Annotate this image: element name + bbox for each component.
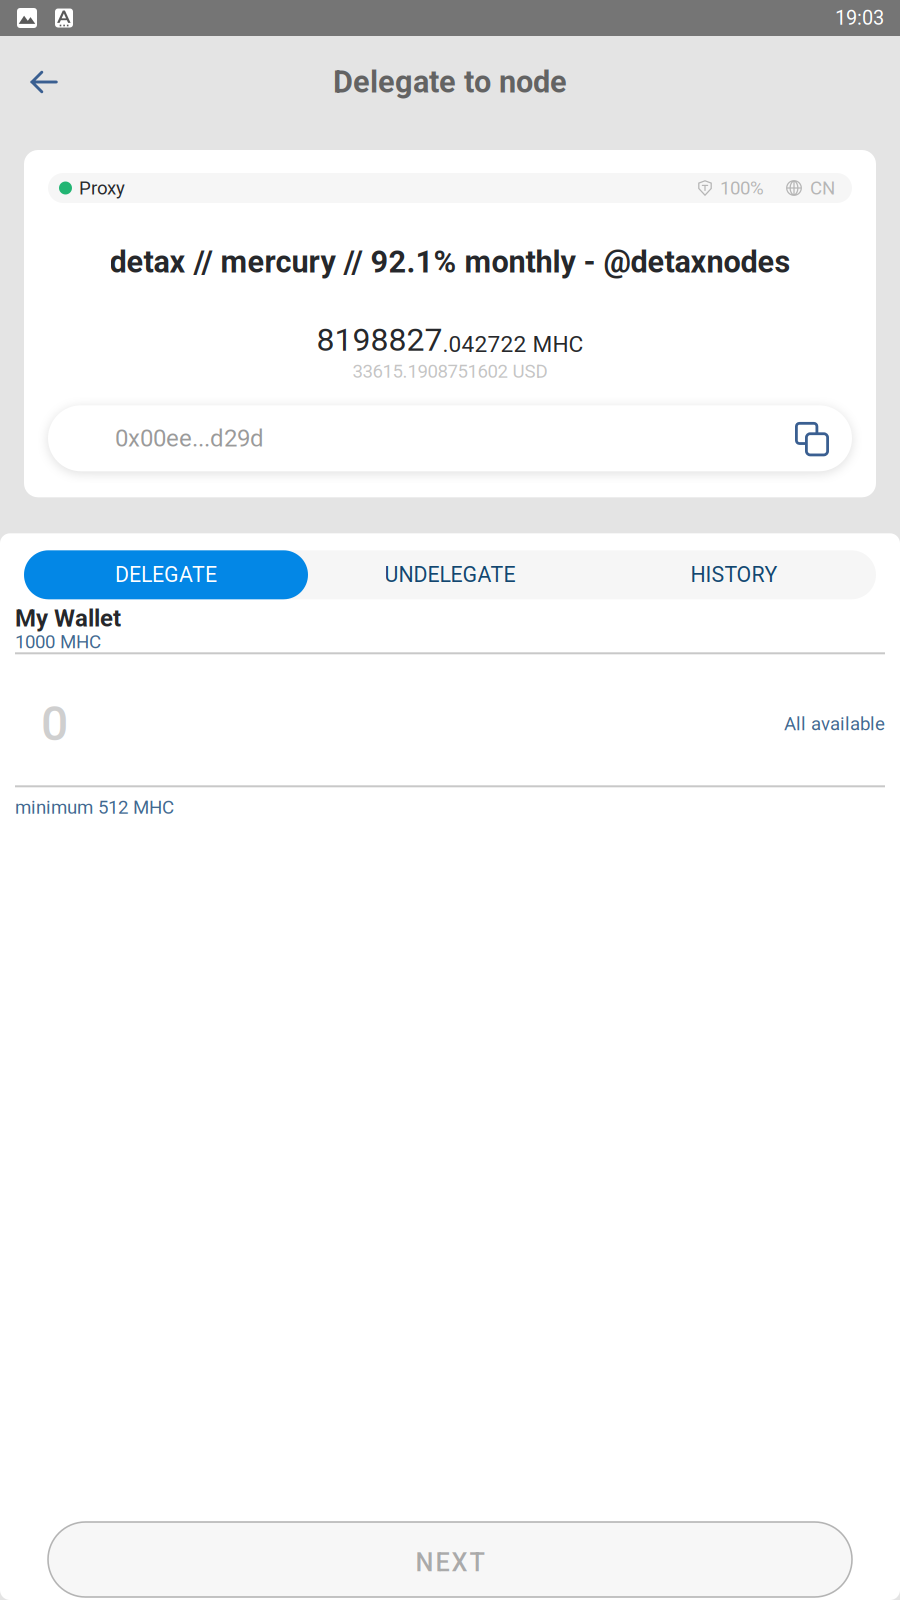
staticText: My Wallet (15, 604, 121, 632)
staticText: detax // mercury // 92.1% monthly - @det… (109, 244, 790, 280)
staticText: CN (810, 177, 835, 199)
button[interactable]: HISTORY (592, 550, 876, 599)
button[interactable]: Back (15, 54, 73, 110)
button[interactable]: 0x00ee...d29d (48, 405, 852, 471)
staticText: All available (784, 713, 885, 735)
button[interactable]: All available (784, 713, 885, 735)
staticText: minimum 512 MHC (15, 796, 174, 818)
staticText: DELEGATE (115, 562, 217, 587)
staticText: 19:03 (835, 6, 884, 30)
staticText: 1000 MHC (15, 631, 101, 653)
staticText: 0x00ee...d29d (115, 424, 264, 452)
staticText: 8198827 (316, 321, 442, 358)
staticText: 0 (41, 696, 68, 752)
staticText: Proxy (79, 177, 125, 199)
staticText: HISTORY (690, 562, 777, 587)
staticText: 33615.1908751602 USD (352, 360, 547, 382)
button[interactable]: DELEGATE (24, 550, 308, 599)
staticText: UNDELEGATE (384, 562, 515, 587)
staticText: Delegate to node (333, 64, 567, 100)
staticText: .042722 MHC (442, 331, 583, 357)
button[interactable]: UNDELEGATE (308, 550, 592, 599)
button[interactable]: N E X T (48, 1522, 852, 1597)
staticText: 100% (720, 177, 764, 199)
staticText: N E X T (415, 1548, 484, 1577)
